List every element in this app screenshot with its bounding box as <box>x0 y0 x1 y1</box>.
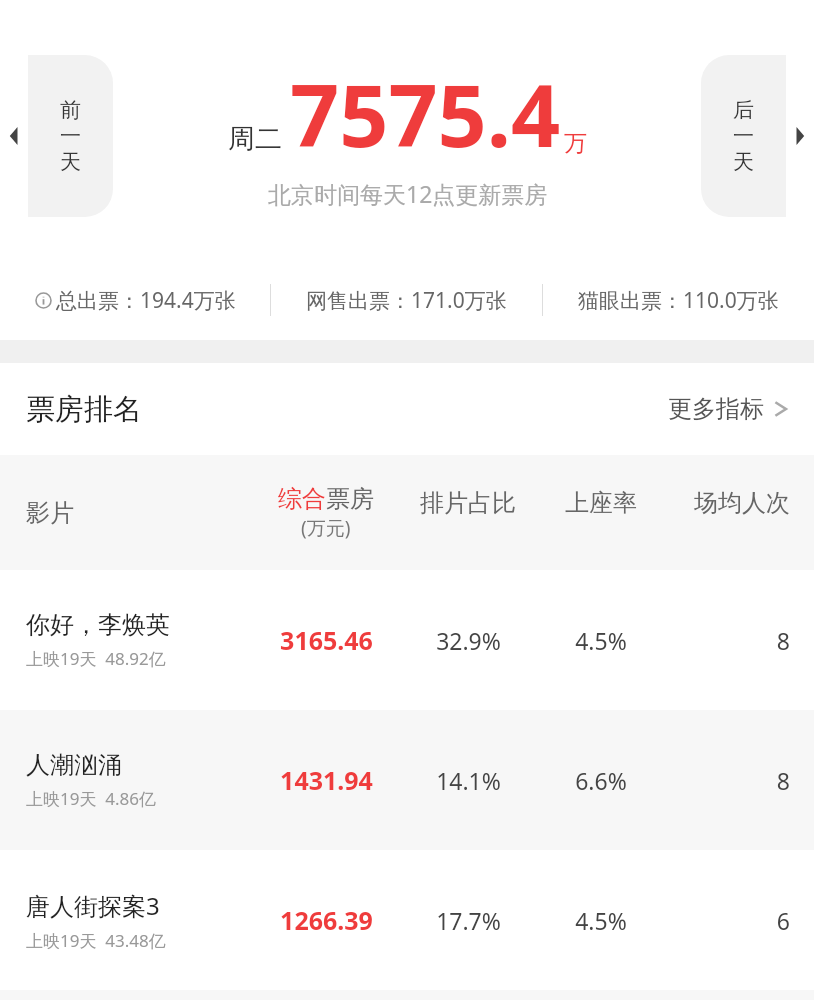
staticText: 4.5% <box>575 625 627 656</box>
staticText: 8 <box>776 765 790 796</box>
staticText: 7575.4 <box>290 55 561 172</box>
staticText: 场均人次 <box>694 488 790 518</box>
staticText: 上映19天 48.92亿 <box>26 647 166 670</box>
button[interactable]: 网售出票：171.0万张 <box>271 260 542 340</box>
staticText: 排片占比 <box>420 488 516 518</box>
button[interactable]: 后一天 <box>701 55 814 217</box>
staticText: 3165.46 <box>280 623 373 657</box>
staticText: 上映19天 4.86亿 <box>26 787 157 810</box>
button[interactable]: 前一天 <box>0 55 113 217</box>
staticText: 网售出票：171.0万张 <box>306 286 507 315</box>
staticText: 周二 <box>228 122 282 156</box>
staticText: 17.7% <box>436 905 501 936</box>
staticText: 6 <box>776 905 790 936</box>
staticText: 票房排名 <box>26 391 142 428</box>
staticText: 一 <box>60 123 81 149</box>
staticText: 天 <box>60 149 81 175</box>
button[interactable]: 总出票：194.4万张 <box>0 260 270 340</box>
staticText: 人潮汹涌 <box>26 750 122 780</box>
staticText: 8 <box>776 625 790 656</box>
button[interactable]: 猫眼出票：110.0万张 <box>543 260 814 340</box>
staticText: 1431.94 <box>280 763 373 797</box>
staticText: 猫眼出票：110.0万张 <box>578 286 779 315</box>
staticText: 1266.39 <box>280 903 373 937</box>
staticText: 总出票：194.4万张 <box>56 286 236 315</box>
staticText: 14.1% <box>436 765 501 796</box>
staticText: 上映19天 43.48亿 <box>26 929 166 952</box>
staticText: 影片 <box>26 498 74 528</box>
staticText: 上座率 <box>565 488 637 518</box>
button[interactable]: 唐人街探案3 <box>0 850 814 990</box>
staticText: 前 <box>60 97 81 123</box>
staticText: (万元) <box>301 515 351 541</box>
staticText: 唐人街探案3 <box>26 889 160 922</box>
staticText: 后 <box>733 97 754 123</box>
staticText: 4.5% <box>575 905 627 936</box>
button[interactable]: 人潮汹涌 <box>0 710 814 850</box>
staticText: 更多指标 <box>668 394 764 424</box>
staticText: 综合票房 <box>278 484 374 514</box>
staticText: 32.9% <box>436 625 501 656</box>
staticText: 北京时间每天12点更新票房 <box>268 178 548 209</box>
button[interactable]: 你好，李焕英 <box>0 570 814 710</box>
staticText: 一 <box>733 123 754 149</box>
staticText: 你好，李焕英 <box>26 610 170 640</box>
staticText: 万 <box>564 129 587 158</box>
button[interactable]: 更多指标 <box>668 394 788 424</box>
staticText: 6.6% <box>575 765 627 796</box>
staticText: 天 <box>733 149 754 175</box>
